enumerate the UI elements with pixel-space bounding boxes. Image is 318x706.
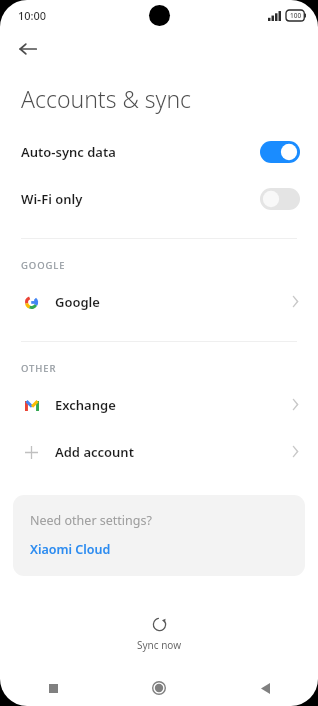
staticText: Need other settings? bbox=[30, 512, 152, 529]
staticText: Exchange bbox=[55, 396, 292, 414]
staticText: Add account bbox=[55, 443, 292, 461]
button[interactable]: Google bbox=[0, 278, 318, 325]
button[interactable]: Home bbox=[106, 670, 212, 706]
staticText: Wi-Fi only bbox=[21, 190, 260, 208]
button[interactable]: Recent apps bbox=[0, 670, 106, 706]
button[interactable]: Back bbox=[10, 31, 46, 67]
button[interactable]: Sync now bbox=[0, 612, 318, 657]
button[interactable]: Exchange bbox=[0, 381, 318, 428]
button[interactable]: Back bbox=[212, 670, 318, 706]
button[interactable]: Add account bbox=[0, 428, 318, 475]
button[interactable]: Auto-sync data bbox=[0, 128, 318, 175]
staticText: GOOGLE bbox=[21, 259, 66, 272]
button[interactable]: Need other settings? bbox=[13, 495, 305, 576]
staticText: OTHER bbox=[21, 362, 57, 375]
staticText: 10:00 bbox=[18, 8, 47, 23]
staticText: Google bbox=[55, 293, 292, 311]
staticText: Accounts & sync bbox=[21, 83, 192, 114]
staticText: 100 bbox=[290, 11, 302, 20]
staticText: Sync now bbox=[137, 638, 182, 652]
staticText: Xiaomi Cloud bbox=[30, 541, 111, 558]
staticText: Auto-sync data bbox=[21, 143, 260, 161]
button[interactable]: Wi-Fi only bbox=[0, 175, 318, 222]
